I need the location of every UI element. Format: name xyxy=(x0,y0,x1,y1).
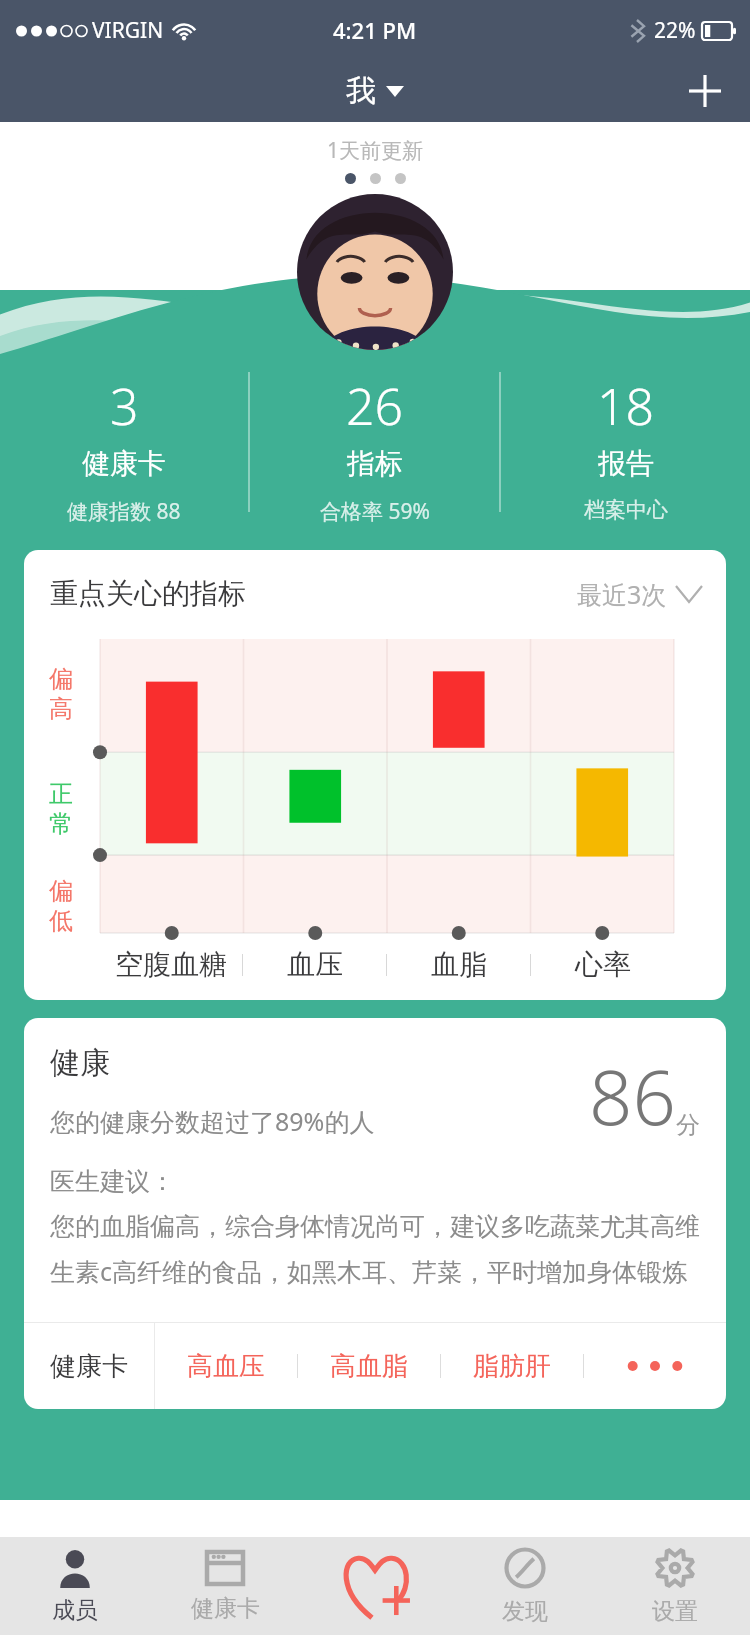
staticText: 高血脂 xyxy=(330,1350,408,1383)
staticText: 成员 xyxy=(52,1596,98,1625)
staticText: 医生建议： xyxy=(50,1166,175,1197)
button[interactable]: 高血压 xyxy=(155,1323,297,1409)
staticText: 4:21 PM xyxy=(333,15,417,45)
staticText: 您的健康分数超过了89%的人 xyxy=(50,1104,375,1138)
staticText: 空腹血糖 xyxy=(115,947,227,982)
staticText: 血压 xyxy=(287,947,343,982)
button[interactable]: 发现 xyxy=(450,1537,600,1635)
button[interactable]: 脂肪肝 xyxy=(441,1323,583,1409)
button[interactable]: 空腹血糖 xyxy=(100,947,242,982)
button[interactable]: 3 xyxy=(0,372,248,524)
staticText: 分 xyxy=(676,1110,700,1140)
staticText: 我 xyxy=(346,72,376,110)
staticText: 健康 xyxy=(50,1044,110,1082)
staticText: 指标 xyxy=(347,446,403,481)
button[interactable]: 血压 xyxy=(243,947,386,982)
button[interactable]: Add health record xyxy=(300,1537,450,1635)
staticText: 健康卡 xyxy=(82,446,166,481)
staticText: 低 xyxy=(49,906,73,936)
button[interactable]: 设置 xyxy=(600,1537,750,1635)
staticText: 发现 xyxy=(502,1597,548,1626)
button[interactable]: 我 xyxy=(346,72,404,110)
staticText: 3 xyxy=(110,372,139,440)
staticText: 合格率 59% xyxy=(320,497,430,524)
staticText: 高 xyxy=(49,694,73,724)
button[interactable]: 心率 xyxy=(531,947,674,982)
button[interactable]: 重点关心的指标 xyxy=(24,550,726,1000)
staticText: 设置 xyxy=(652,1597,698,1626)
button[interactable]: 健康卡 xyxy=(150,1537,300,1635)
button[interactable]: 26 xyxy=(250,372,499,524)
staticText: 常 xyxy=(49,809,73,839)
staticText: 偏 xyxy=(49,664,73,694)
button[interactable]: 健康 xyxy=(24,1018,726,1409)
button[interactable]: Add xyxy=(682,68,728,114)
staticText: 血脂 xyxy=(431,947,487,982)
button[interactable]: 高血脂 xyxy=(298,1323,440,1409)
button[interactable] xyxy=(297,194,453,350)
staticText: 报告 xyxy=(598,446,654,481)
staticText: 26 xyxy=(346,372,404,440)
button[interactable]: 最近3次 xyxy=(577,577,702,611)
staticText: 心率 xyxy=(575,947,631,982)
staticText: 高血压 xyxy=(187,1350,265,1383)
staticText: 86 xyxy=(589,1044,676,1148)
staticText: 健康卡 xyxy=(50,1350,128,1383)
staticText: 您的血脂偏高，综合身体情况尚可，建议多吃蔬菜尤其高维生素c高纤维的食品，如黑木耳… xyxy=(50,1211,700,1288)
button[interactable]: 成员 xyxy=(0,1537,150,1635)
staticText: 档案中心 xyxy=(584,497,668,523)
staticText: VIRGIN xyxy=(92,16,164,45)
button[interactable]: 血脂 xyxy=(387,947,530,982)
staticText: 1天前更新 xyxy=(327,136,424,165)
staticText: 偏 xyxy=(49,876,73,906)
staticText: 健康指数 88 xyxy=(67,497,181,524)
staticText: 22% xyxy=(654,16,696,45)
button[interactable]: 健康卡 xyxy=(24,1323,154,1409)
staticText: 最近3次 xyxy=(577,577,667,611)
staticText: 脂肪肝 xyxy=(473,1350,551,1383)
button[interactable]: 18 xyxy=(501,372,750,524)
staticText: 健康卡 xyxy=(191,1594,260,1623)
staticText: 18 xyxy=(597,372,655,440)
staticText: 正 xyxy=(49,779,73,809)
button[interactable]: More xyxy=(584,1323,726,1409)
staticText: 重点关心的指标 xyxy=(50,576,246,611)
